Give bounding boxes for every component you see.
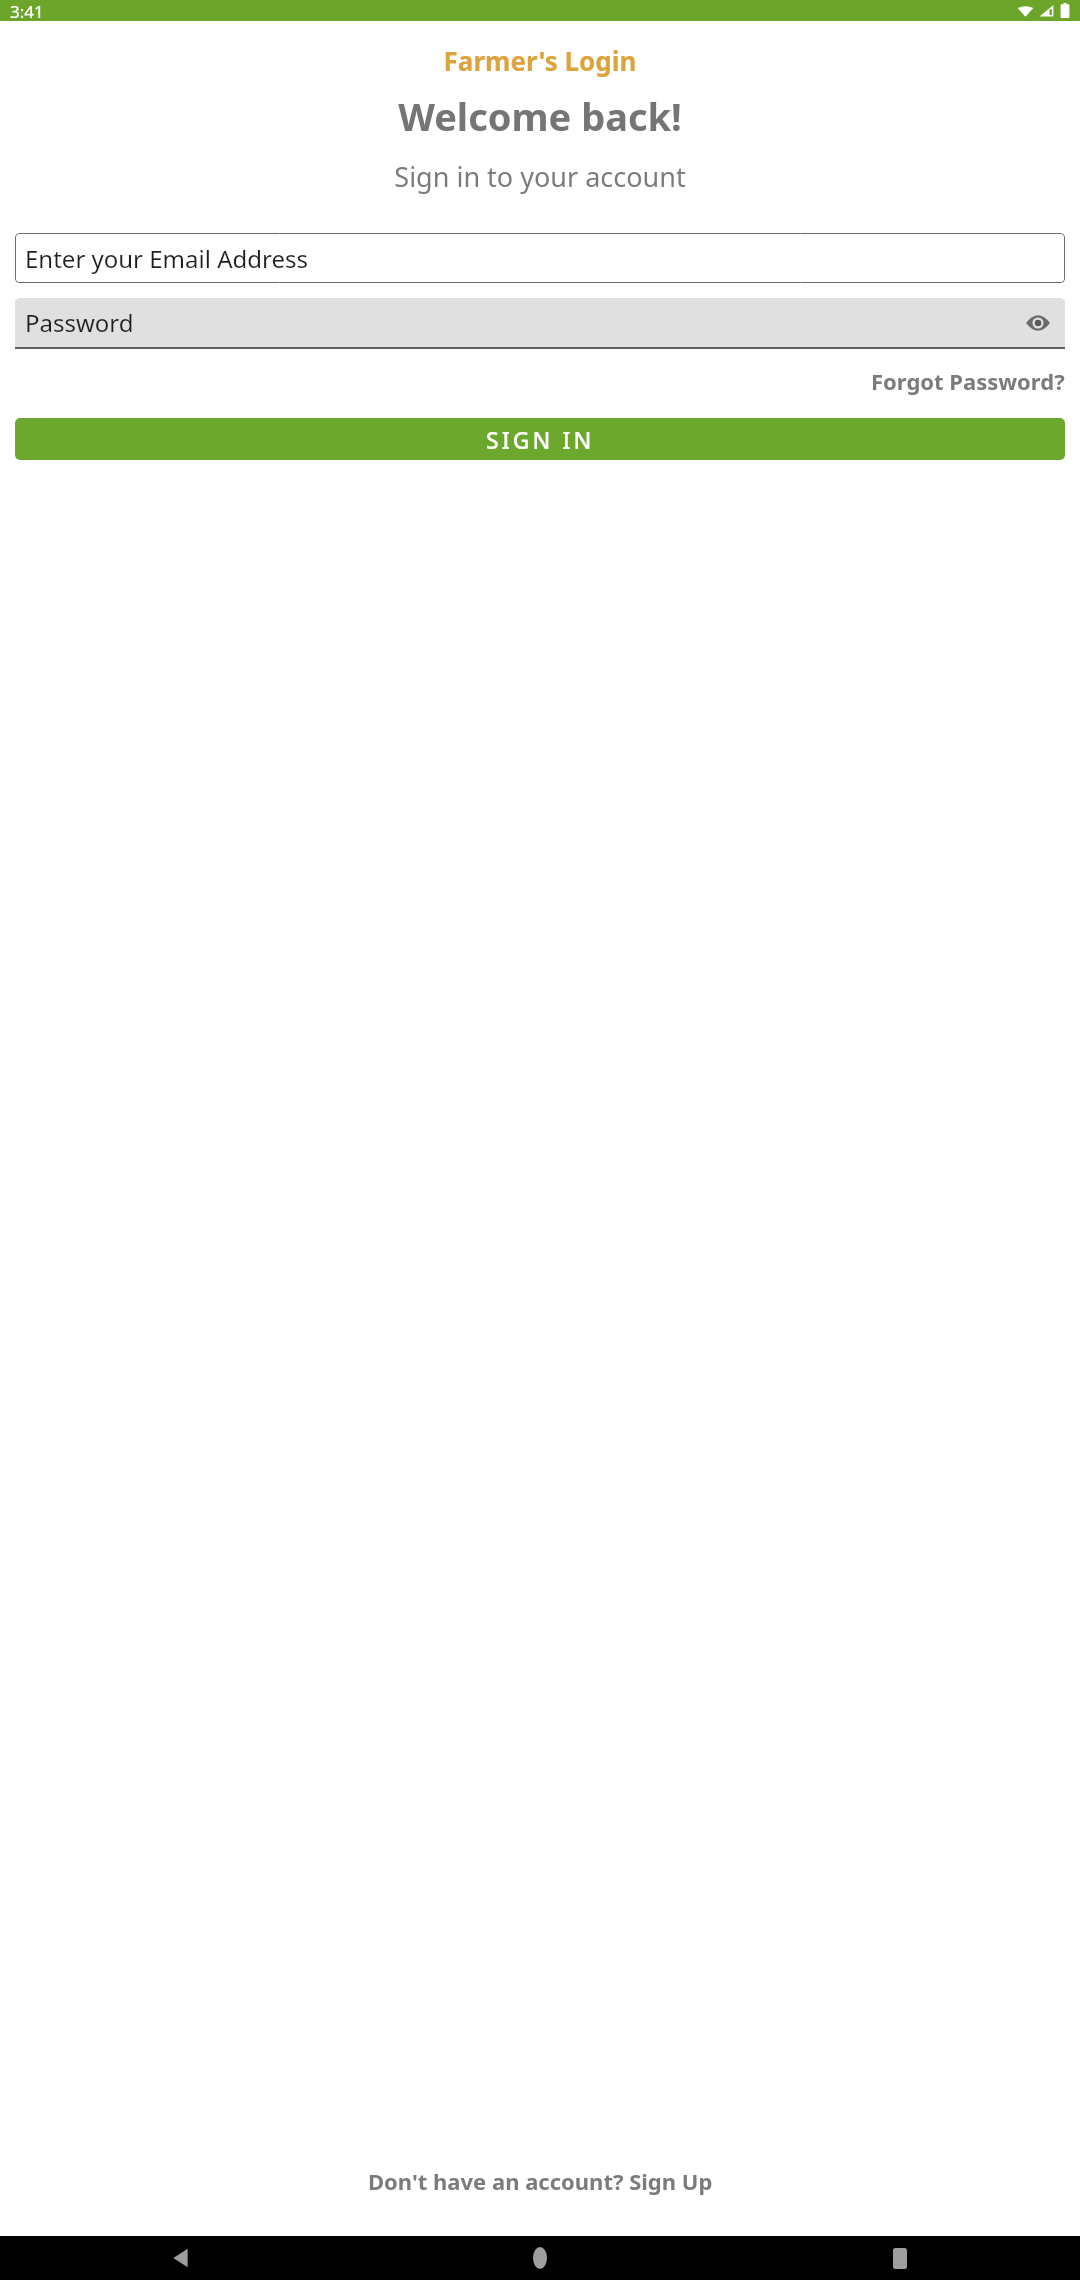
staticText: Sign in to your account [0,158,1080,195]
button[interactable]: Password [15,298,1065,349]
staticText: Forgot Password? [871,366,1065,396]
staticText: Enter your Email Address [25,242,308,275]
staticText: SIGN IN [486,424,595,455]
staticText: Welcome back! [0,90,1080,142]
button[interactable]: Forgot Password? [871,366,1065,396]
staticText: 3:41 [10,0,44,21]
button[interactable]: Don't have an account? Sign Up [368,2166,713,2196]
button[interactable]: Back [0,2236,360,2280]
staticText: Don't have an account? Sign Up [368,2166,713,2196]
staticText: Password [25,306,134,339]
button[interactable]: SIGN IN [15,418,1065,460]
button[interactable]: Recent apps [720,2236,1080,2280]
button[interactable]: Show password [1023,308,1053,338]
button[interactable]: Enter your Email Address [15,233,1065,283]
button[interactable]: Home [360,2236,720,2280]
staticText: Farmer's Login [0,43,1080,78]
